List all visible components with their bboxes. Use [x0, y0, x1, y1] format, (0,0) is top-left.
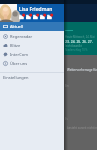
staticText: Ein	[65, 84, 69, 88]
button[interactable]: Aktuell	[0, 22, 64, 31]
staticText: Niederschlag 10 %	[65, 48, 88, 52]
staticText: Über uns	[10, 61, 28, 66]
button[interactable]: Blitze	[0, 41, 64, 50]
button[interactable]: Regenradar	[0, 32, 64, 41]
staticText: besteht zurzeit nicht in Gefahr	[67, 126, 97, 130]
staticText: Einstellungen	[3, 75, 29, 80]
staticText: 23. 24. 25. 26. 27.	[65, 39, 93, 44]
staticText: Heute Mittwoch, 24. Mai	[65, 35, 95, 39]
button[interactable]: InterCom	[0, 50, 64, 59]
staticText: Lisa Friedman	[19, 6, 53, 13]
staticText: Blitze	[10, 43, 21, 48]
button[interactable]: Über uns	[0, 59, 64, 68]
staticText: Regenradar	[10, 34, 33, 39]
staticText: Aktuell	[10, 24, 23, 29]
staticText: Wettervorhersage für	[67, 68, 97, 72]
button[interactable]: Einstellungen	[0, 73, 64, 82]
staticText: Es	[65, 117, 68, 121]
staticText: leicht bewölkt	[65, 44, 82, 48]
staticText: InterCom	[10, 52, 28, 57]
